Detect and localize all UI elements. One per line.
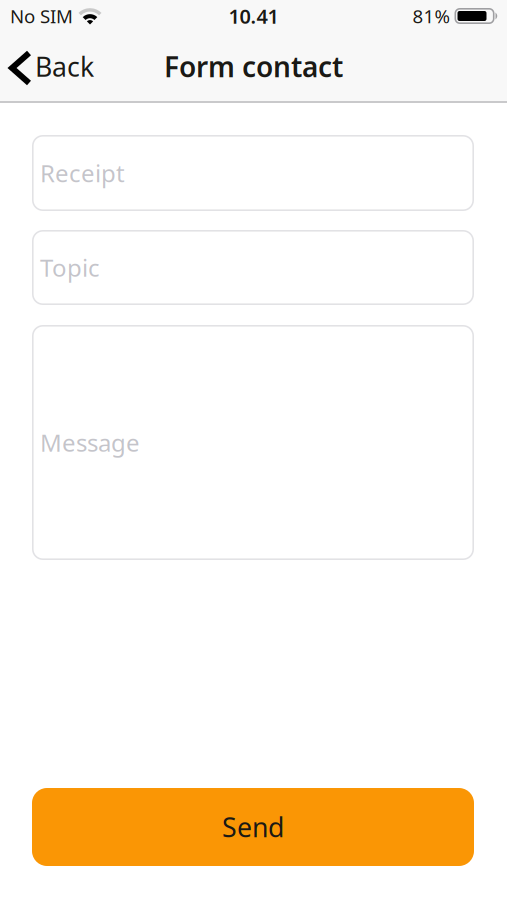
button[interactable]: Back [0,49,94,84]
staticText: Receipt [40,157,125,189]
button[interactable]: Message [32,325,474,560]
staticText: Message [40,427,140,458]
staticText: 81% [412,4,450,28]
button[interactable]: Send [32,788,474,866]
staticText: Back [35,49,94,84]
staticText: 10.41 [228,3,278,29]
staticText: Send [222,809,284,845]
button[interactable]: Topic [32,230,474,305]
button[interactable]: Receipt [32,135,474,211]
staticText: No SIM [10,4,73,28]
staticText: Topic [40,252,100,283]
staticText: Form contact [164,48,343,85]
